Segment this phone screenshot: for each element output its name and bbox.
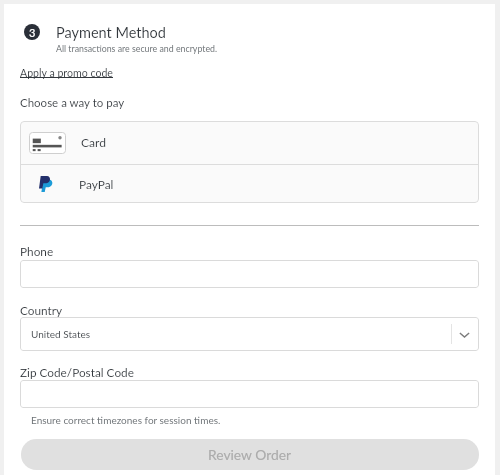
staticText: Phone — [20, 244, 54, 258]
staticText: Country — [20, 303, 63, 317]
staticText: United States — [31, 328, 91, 340]
staticText: 3 — [29, 26, 36, 39]
other: Open country list — [459, 329, 470, 340]
button[interactable] — [20, 260, 479, 288]
staticText: Card — [81, 135, 107, 150]
staticText: Choose a way to pay — [20, 96, 125, 110]
staticText: PayPal — [79, 177, 114, 191]
staticText: Zip Code/Postal Code — [20, 365, 134, 379]
staticText: All transactions are secure and encrypte… — [56, 43, 218, 54]
button[interactable]: United States — [20, 317, 479, 351]
staticText: Ensure correct timezones for session tim… — [31, 414, 221, 426]
button[interactable]: Card — [20, 121, 479, 164]
staticText: Apply a promo code — [20, 67, 113, 80]
button[interactable]: Apply a promo code — [20, 67, 113, 80]
staticText: Payment Method — [56, 24, 166, 41]
button[interactable]: Review Order — [21, 439, 479, 470]
button[interactable] — [20, 380, 479, 408]
button[interactable]: PayPal — [20, 165, 479, 203]
staticText: Review Order — [208, 446, 292, 463]
